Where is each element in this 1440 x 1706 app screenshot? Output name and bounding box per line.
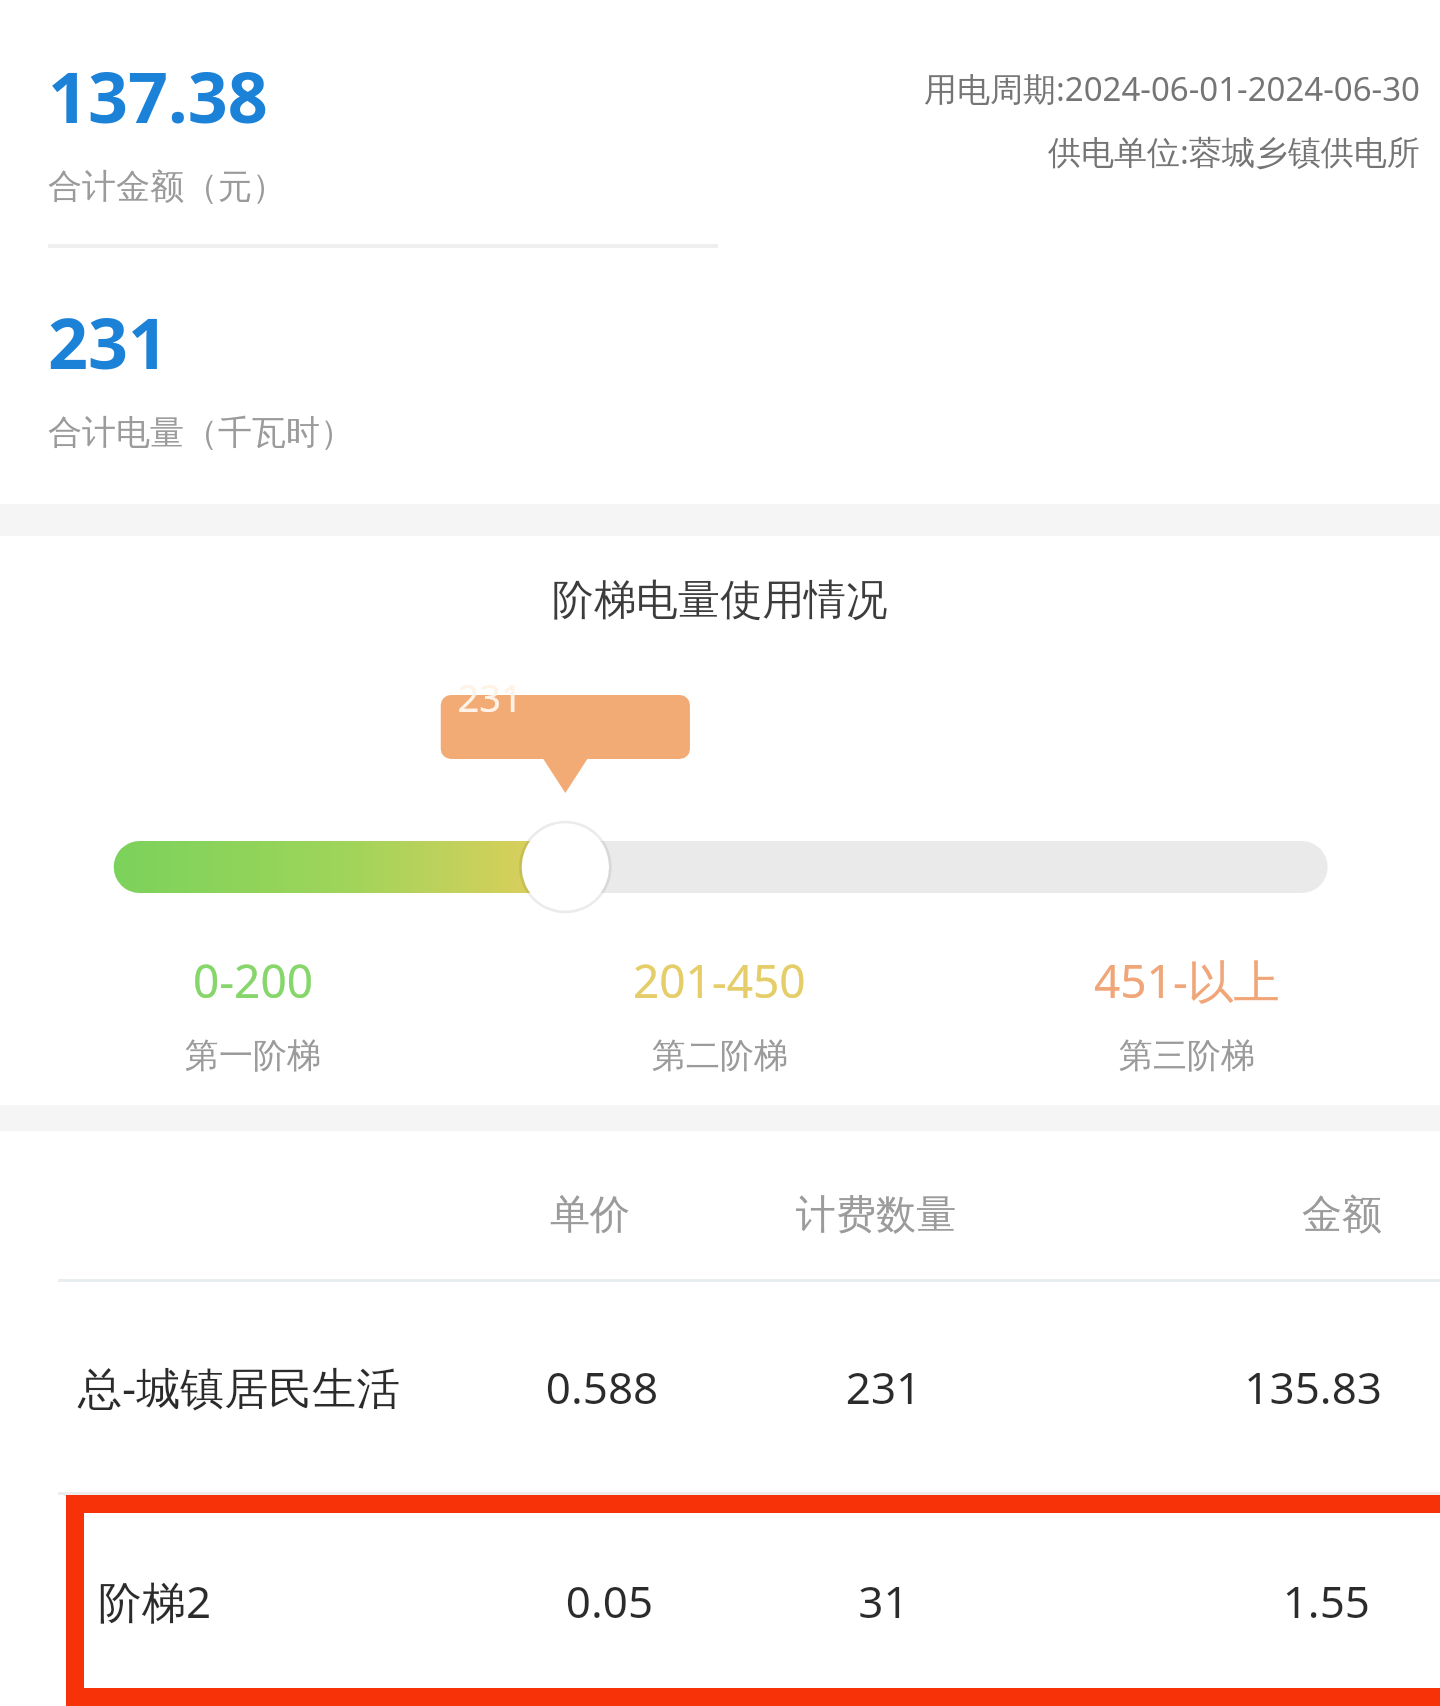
staticText: 总-城镇居民生活 <box>78 1357 474 1417</box>
staticText: 0.05 <box>485 1571 734 1631</box>
staticText: 231 <box>730 1357 1037 1417</box>
staticText: 合计金额（元） <box>48 165 286 208</box>
staticText: 第三阶梯 <box>1119 1034 1255 1077</box>
staticText: 1.55 <box>1033 1571 1370 1631</box>
staticText: 135.83 <box>1037 1357 1382 1417</box>
staticText: 单价 <box>460 1189 720 1239</box>
staticText: 0.588 <box>474 1357 730 1417</box>
staticText: 31 <box>734 1571 1033 1631</box>
staticText: 231 <box>48 294 169 389</box>
staticText: 合计电量（千瓦时） <box>48 411 354 454</box>
staticText: 201-450 <box>633 949 806 1012</box>
staticText: 阶梯电量使用情况 <box>0 574 1440 627</box>
staticText: 用电周期:2024-06-01-2024-06-30 <box>924 66 1420 111</box>
staticText: 0-200 <box>193 949 314 1012</box>
staticText: 供电单位:蓉城乡镇供电所 <box>1048 129 1420 174</box>
staticText: 231 <box>430 671 550 723</box>
staticText: 金额 <box>1032 1189 1382 1239</box>
staticText: 第二阶梯 <box>652 1034 788 1077</box>
staticText: 第一阶梯 <box>185 1034 321 1077</box>
staticText: 计费数量 <box>720 1189 1032 1239</box>
button[interactable]: 总-城镇居民生活 <box>0 1282 1440 1492</box>
staticText: 451-以上 <box>1094 949 1280 1012</box>
staticText: 137.38 <box>48 48 268 143</box>
button[interactable]: 阶梯2 <box>84 1513 1440 1688</box>
staticText: 阶梯2 <box>98 1571 485 1631</box>
